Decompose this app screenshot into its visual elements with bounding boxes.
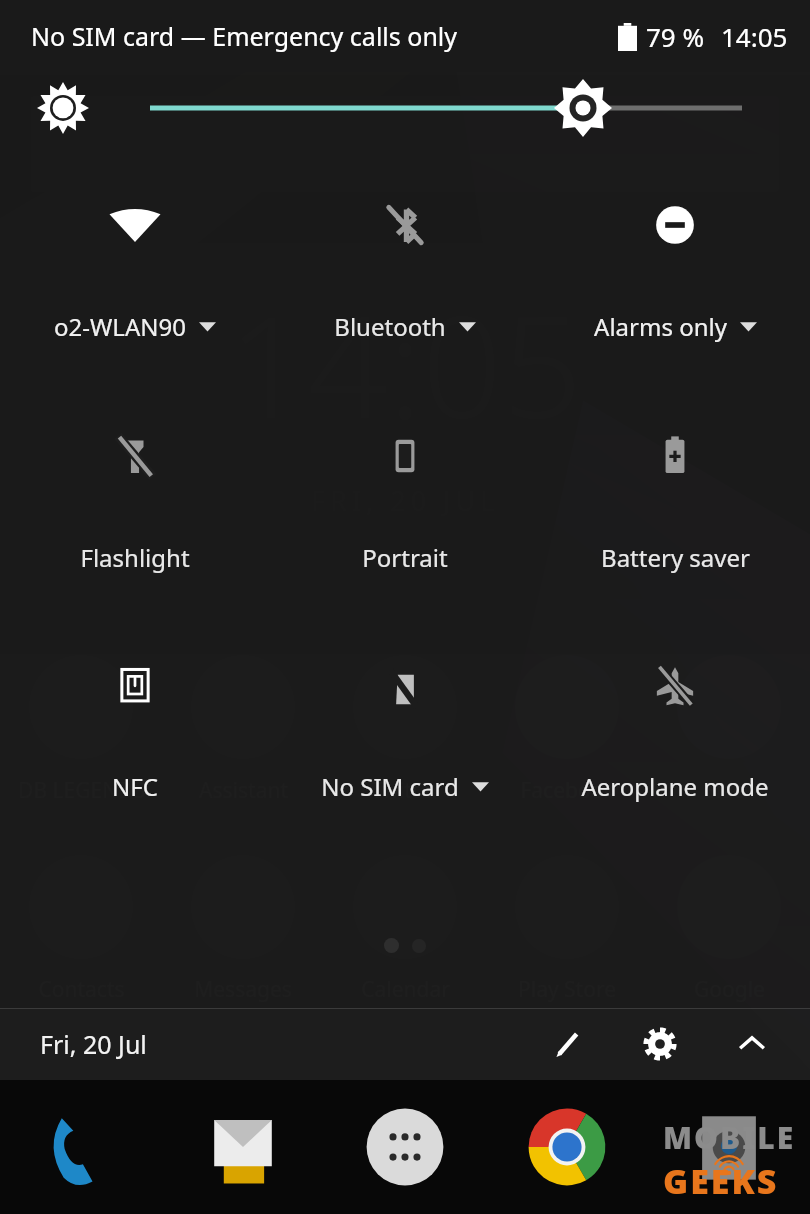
button[interactable]: Flashlight [0, 415, 270, 578]
staticText: Aeroplane mode [581, 770, 769, 803]
staticText: Twitter [371, 776, 440, 805]
staticText: Battery saver [601, 541, 750, 574]
button[interactable]: No SIM card [270, 644, 540, 807]
button[interactable]: Edit [540, 1016, 596, 1072]
staticText: Facebook [520, 776, 615, 805]
staticText: Flashlight [80, 541, 190, 574]
staticText: Slack [704, 776, 755, 805]
button[interactable]: Collapse [724, 1016, 780, 1072]
button[interactable]: Camera [648, 1080, 810, 1214]
button[interactable]: Brightness [0, 72, 810, 150]
button[interactable]: Battery saver [540, 415, 810, 578]
staticText: o2-WLAN90 [54, 310, 186, 343]
button[interactable]: Portrait [270, 415, 540, 578]
staticText: GEEKS [663, 1158, 779, 1204]
button[interactable]: Chrome [486, 1080, 648, 1214]
staticText: DB LEGENDS [18, 776, 145, 805]
staticText: 14:05 [721, 19, 788, 54]
button[interactable]: Phone [0, 1080, 162, 1214]
staticText: MOBILE [663, 1117, 796, 1158]
staticText: Bluetooth [334, 310, 446, 343]
staticText: No SIM card [321, 770, 459, 803]
button[interactable]: Bluetooth [270, 184, 540, 347]
staticText: Fri, 20 Jul [40, 1027, 147, 1061]
staticText: 79 % [646, 19, 705, 54]
staticText: Alarms only [594, 310, 727, 343]
button[interactable]: Email [162, 1080, 324, 1214]
staticText: No SIM card — Emergency calls only [31, 19, 458, 53]
button[interactable]: Alarms only [540, 184, 810, 347]
staticText: Portrait [362, 541, 448, 574]
button[interactable]: o2-WLAN90 [0, 184, 270, 347]
staticText: 14:05 [228, 268, 582, 459]
button[interactable]: NFC [0, 644, 270, 807]
button[interactable]: Settings [632, 1016, 688, 1072]
staticText: NFC [112, 770, 158, 803]
button[interactable]: Apps [324, 1080, 486, 1214]
button[interactable]: Aeroplane mode [540, 644, 810, 807]
